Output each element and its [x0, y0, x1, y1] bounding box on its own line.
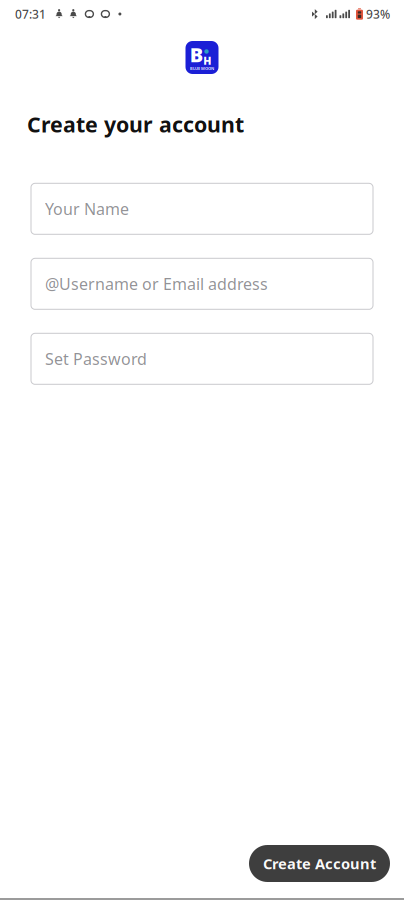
button[interactable]: Your Name: [31, 183, 373, 234]
staticText: B: [190, 41, 203, 68]
staticText: H: [203, 54, 211, 68]
button[interactable]: Set Password: [31, 333, 373, 384]
staticText: Create Account: [263, 854, 376, 873]
staticText: BLUE MOON: [190, 66, 214, 71]
staticText: 07:31: [15, 6, 46, 22]
staticText: 93%: [366, 6, 390, 22]
button[interactable]: Create Account: [249, 845, 390, 882]
staticText: Your Name: [45, 198, 129, 219]
staticText: Create your account: [27, 110, 244, 138]
staticText: @Username or Email address: [45, 273, 268, 294]
staticText: Set Password: [45, 348, 147, 369]
button[interactable]: @Username or Email address: [31, 258, 373, 309]
